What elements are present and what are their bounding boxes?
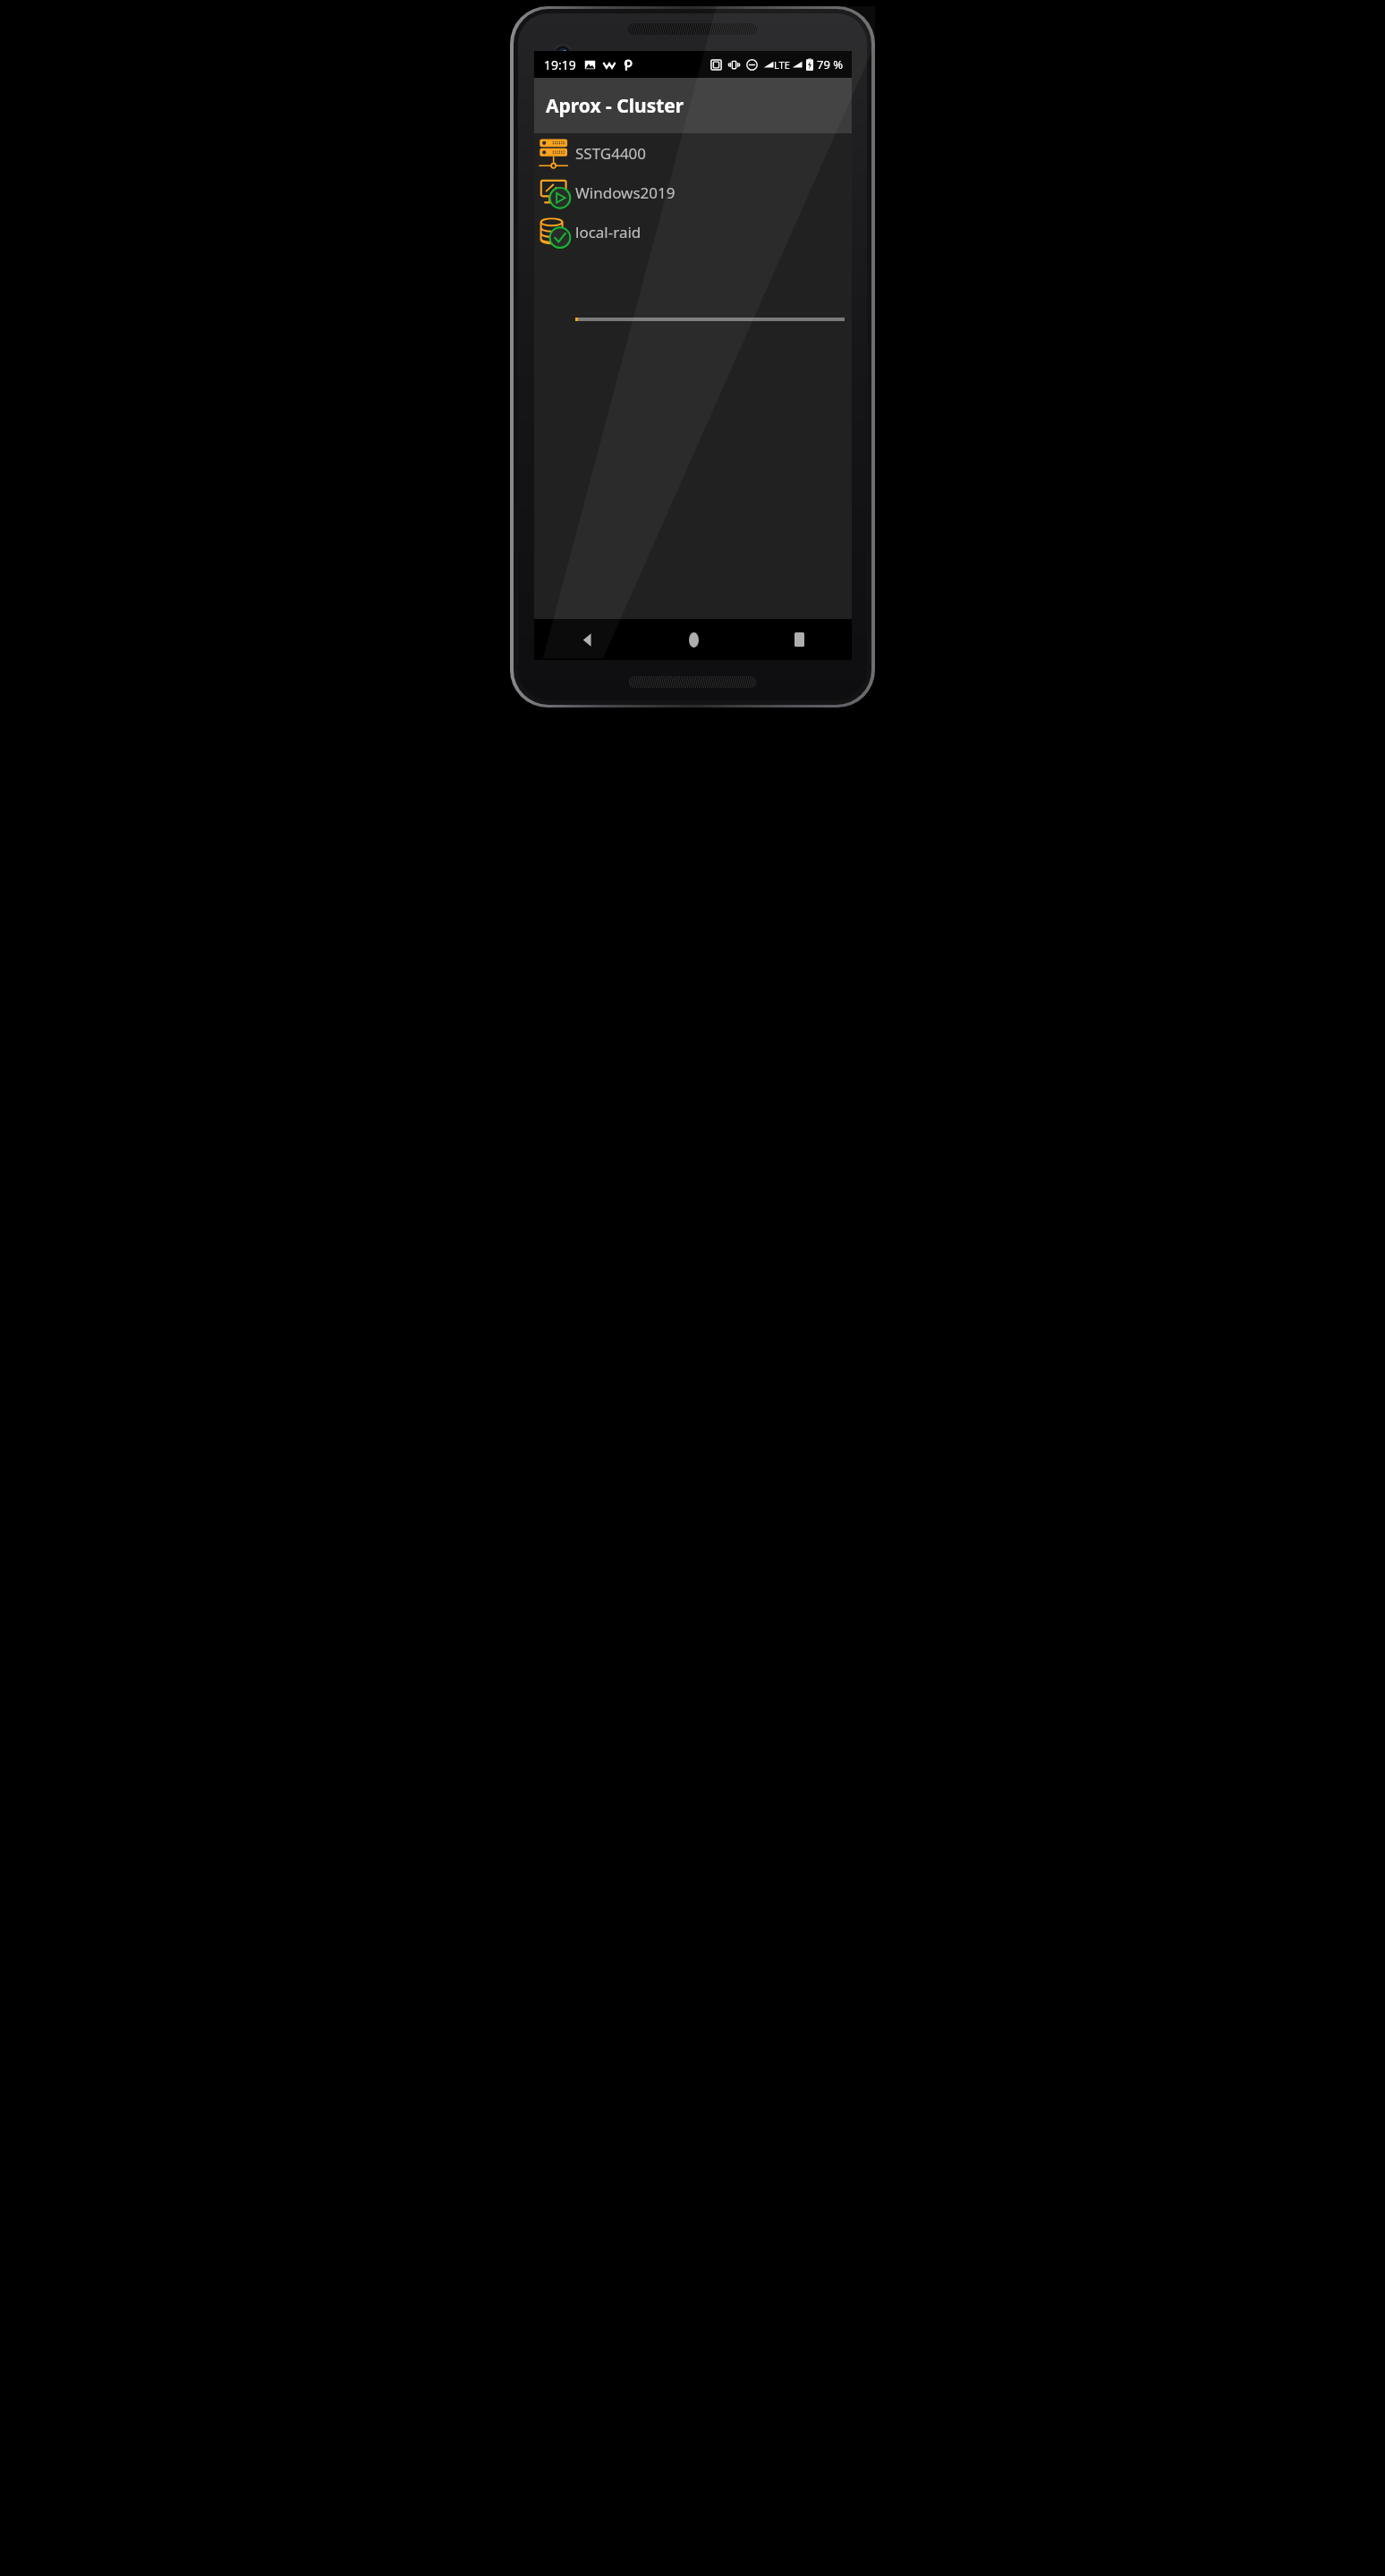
staticText: 19:19 <box>544 56 576 73</box>
staticText: Aprox - Cluster <box>546 93 684 119</box>
staticText: SSTG4400 <box>575 143 647 164</box>
staticText: LTE <box>774 58 790 72</box>
staticText: Windows2019 <box>575 182 676 203</box>
button[interactable]: Recent apps <box>746 619 852 660</box>
button[interactable]: Windows2019 <box>534 173 852 212</box>
button[interactable]: Home <box>641 619 746 660</box>
button[interactable]: local-raid <box>534 212 852 251</box>
button[interactable]: Back <box>534 619 641 660</box>
staticText: 79 % <box>817 56 844 72</box>
button[interactable]: SSTG4400 <box>534 133 852 173</box>
staticText: local-raid <box>575 222 642 242</box>
